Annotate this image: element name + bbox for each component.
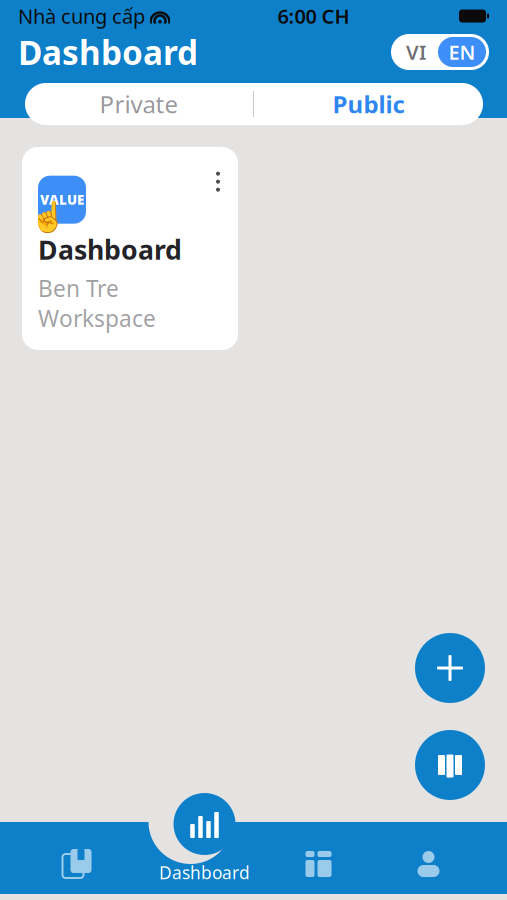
button[interactable]: Private bbox=[25, 83, 253, 125]
staticText: Private bbox=[99, 88, 178, 120]
button[interactable]: Dashboard bbox=[159, 793, 250, 884]
button[interactable]: Map bbox=[415, 730, 485, 800]
staticText: Dashboard bbox=[159, 861, 250, 884]
button[interactable]: Language VI EN bbox=[391, 34, 489, 70]
staticText: Nhà cung cấp bbox=[18, 3, 145, 29]
staticText: 6:00 CH bbox=[277, 3, 349, 29]
staticText: Ben Tre Workspace bbox=[38, 273, 156, 333]
button[interactable]: Public bbox=[254, 83, 483, 125]
staticText: ☝️ bbox=[30, 200, 67, 234]
staticText: VALUE bbox=[40, 191, 84, 208]
button[interactable]: VALUE bbox=[22, 147, 238, 350]
staticText: EN bbox=[448, 39, 475, 65]
button[interactable]: Library bbox=[23, 834, 133, 894]
staticText: Public bbox=[332, 88, 404, 120]
staticText: VI bbox=[406, 39, 426, 65]
button[interactable]: Add bbox=[415, 633, 485, 703]
staticText: Dashboard bbox=[18, 30, 198, 74]
button[interactable]: Apps bbox=[263, 834, 373, 894]
button[interactable]: Profile bbox=[373, 834, 483, 894]
staticText: Dashboard bbox=[38, 232, 182, 267]
